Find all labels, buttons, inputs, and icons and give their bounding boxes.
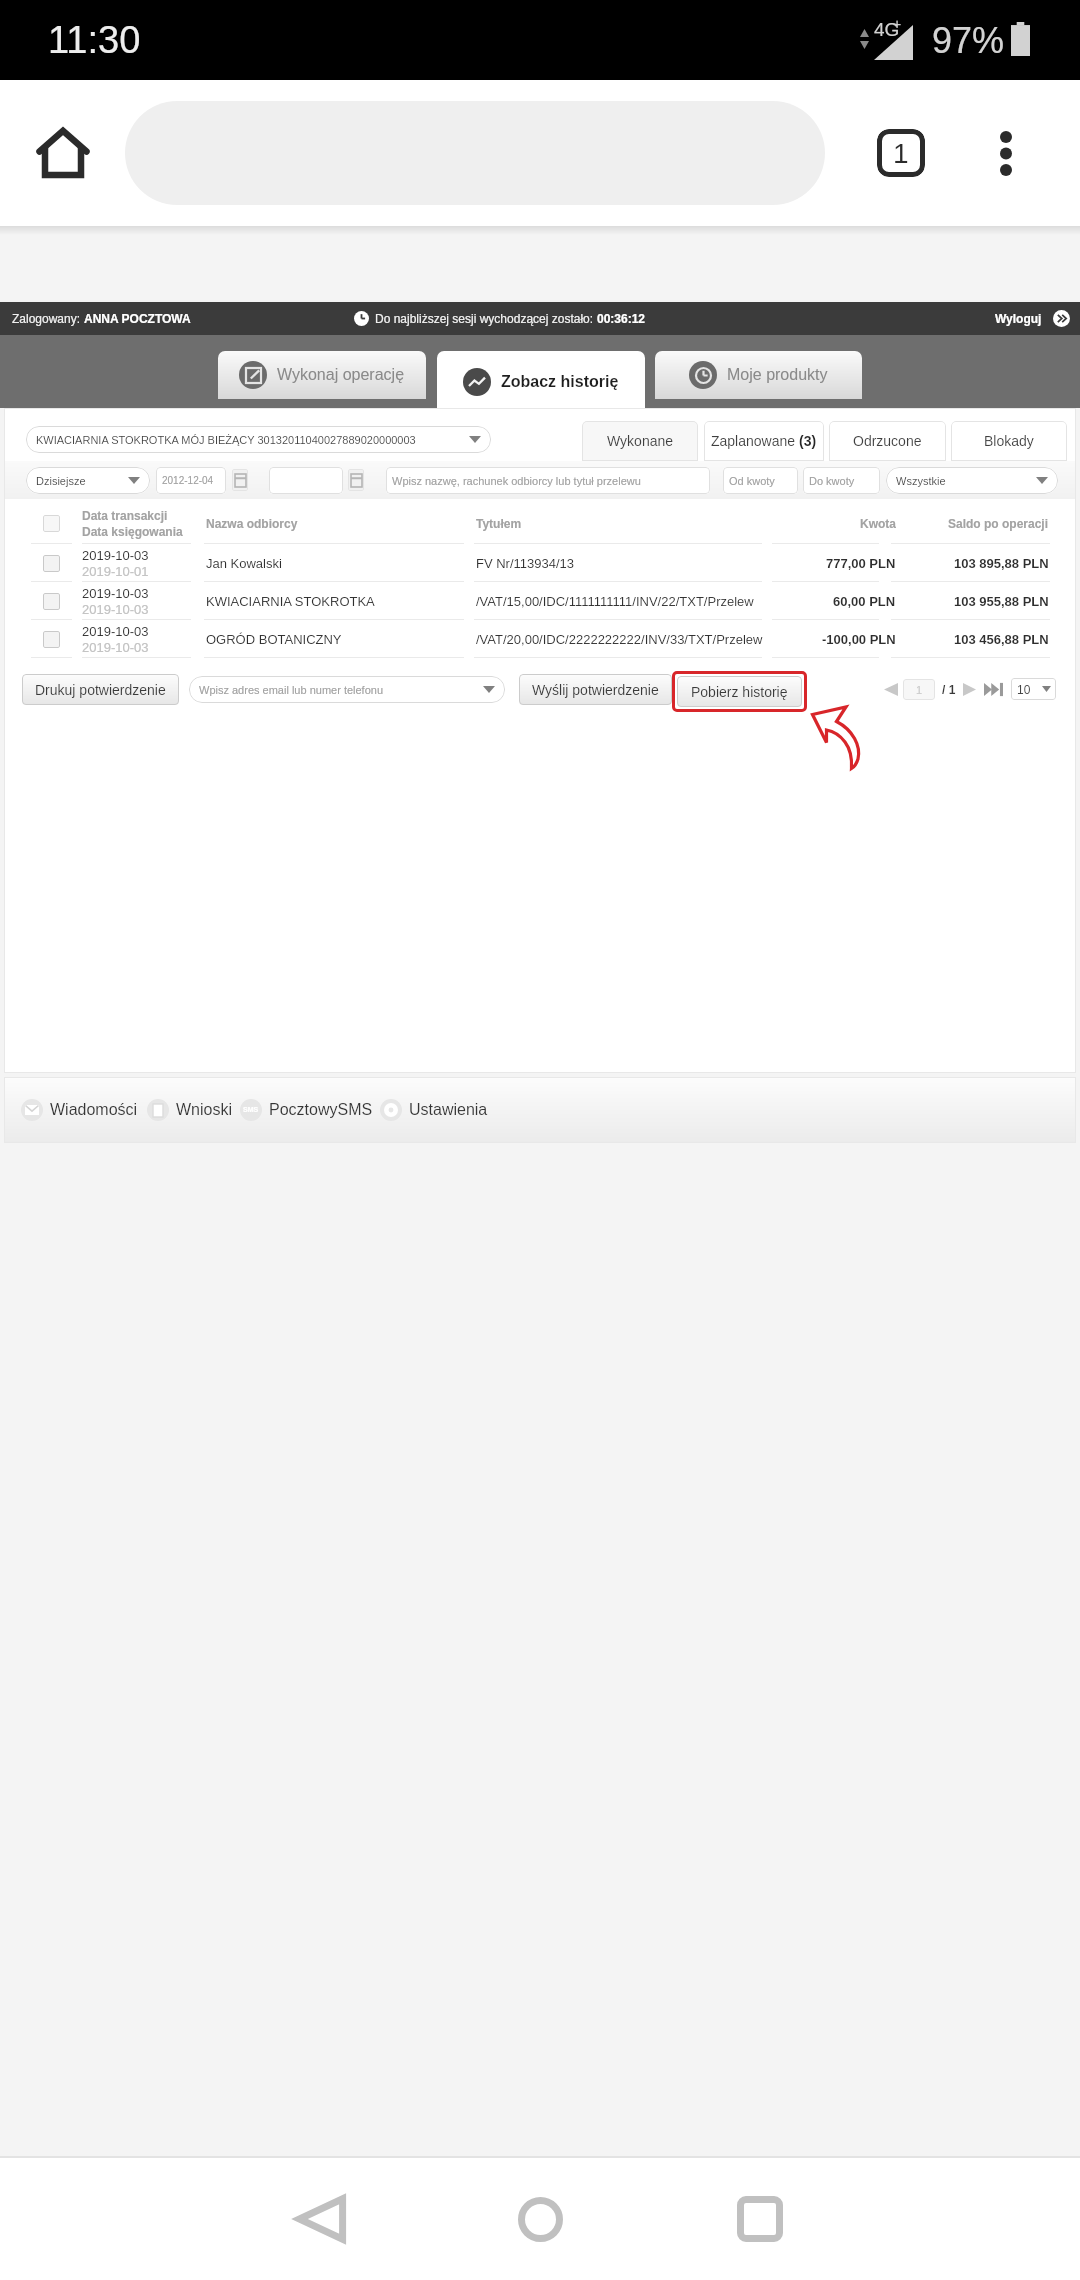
- button[interactable]: [269, 467, 343, 494]
- button[interactable]: Wpisz adres email lub numer telefonu: [189, 676, 505, 703]
- staticText: Od kwoty: [729, 475, 775, 487]
- button[interactable]: Wnioski: [147, 1099, 233, 1121]
- button[interactable]: Wszystkie: [886, 467, 1058, 494]
- button[interactable]: KWIACIARNIA STOKROTKA MÓJ BIEŻĄCY 301320…: [26, 426, 491, 453]
- staticText: 1: [916, 684, 923, 696]
- button[interactable]: Select row: [43, 555, 60, 572]
- staticText: Wykonane: [607, 433, 674, 449]
- button[interactable]: Wykonaj operację: [218, 351, 426, 399]
- staticText: Saldo po operacji: [948, 517, 1049, 530]
- button[interactable]: Select row: [4, 582, 1076, 620]
- button[interactable]: Select row: [43, 631, 60, 648]
- button[interactable]: Recent apps: [705, 2164, 815, 2274]
- button[interactable]: Back: [266, 2164, 376, 2274]
- staticText: 2019-10-03: [82, 602, 149, 617]
- staticText: 103 456,88 PLN: [954, 632, 1049, 647]
- button[interactable]: Zaplanowane: [704, 421, 824, 461]
- button[interactable]: Last page: [984, 682, 1003, 697]
- button[interactable]: Next page: [963, 682, 976, 697]
- staticText: Wszystkie: [896, 475, 946, 487]
- button[interactable]: Zobacz historię: [437, 351, 645, 408]
- button[interactable]: Od kwoty: [723, 467, 798, 494]
- button[interactable]: Select row: [4, 620, 1076, 658]
- staticText: /VAT/20,00/IDC/2222222222/INV/33/TXT/Prz…: [476, 632, 763, 647]
- button[interactable]: Wyloguj: [995, 310, 1070, 327]
- button[interactable]: Previous page: [884, 682, 898, 697]
- staticText: Wyloguj: [995, 312, 1042, 325]
- button[interactable]: Do kwoty: [803, 467, 880, 494]
- staticText: 11:30: [48, 19, 141, 61]
- staticText: Zalogowany:: [12, 312, 84, 325]
- staticText: Dzisiejsze: [36, 475, 86, 487]
- staticText: 4G: [874, 19, 900, 40]
- button[interactable]: Pick date: [232, 469, 248, 491]
- staticText: PocztowySMS: [269, 1101, 373, 1119]
- button[interactable]: Wiadomości: [21, 1099, 138, 1121]
- staticText: (3): [799, 433, 817, 449]
- staticText: SMS: [243, 1106, 259, 1114]
- button[interactable]: Select row: [43, 593, 60, 610]
- staticText: /VAT/15,00/IDC/1111111111/INV/22/TXT/Prz…: [476, 594, 754, 609]
- staticText: Do kwoty: [809, 475, 855, 487]
- button[interactable]: Ustawienia: [380, 1099, 488, 1121]
- staticText: OGRÓD BOTANICZNY: [206, 632, 342, 647]
- staticText: Blokady: [984, 433, 1034, 449]
- button[interactable]: More options: [971, 118, 1041, 188]
- staticText: +: [893, 16, 902, 32]
- staticText: Jan Kowalski: [206, 556, 282, 571]
- staticText: 2019-10-01: [82, 564, 149, 579]
- button[interactable]: Rows per page: [1011, 678, 1056, 700]
- staticText: Kwota: [860, 517, 896, 530]
- button[interactable]: Select row: [4, 544, 1076, 582]
- staticText: 97%: [932, 20, 1005, 60]
- button[interactable]: Blokady: [951, 421, 1067, 461]
- staticText: Nazwa odbiorcy: [206, 517, 298, 530]
- staticText: 2019-10-03: [82, 586, 149, 601]
- staticText: Wpisz adres email lub numer telefonu: [199, 684, 384, 696]
- staticText: 60,00 PLN: [833, 594, 896, 609]
- staticText: Wnioski: [176, 1101, 233, 1119]
- button[interactable]: Pick date: [348, 469, 364, 491]
- button[interactable]: Drukuj potwierdzenie: [22, 674, 179, 705]
- staticText: 10: [1017, 683, 1031, 696]
- staticText: KWIACIARNIA STOKROTKA MÓJ BIEŻĄCY 301320…: [36, 434, 416, 446]
- button[interactable]: Wpisz nazwę, rachunek odbiorcy lub tytuł…: [386, 467, 710, 494]
- button[interactable]: Tabs: [866, 118, 936, 188]
- staticText: Wiadomości: [50, 1101, 138, 1119]
- button[interactable]: Odrzucone: [829, 421, 946, 461]
- staticText: 00:36:12: [597, 312, 646, 325]
- button[interactable]: 2012-12-04: [156, 467, 226, 494]
- button[interactable]: Moje produkty: [655, 351, 862, 399]
- staticText: ANNA POCZTOWA: [84, 312, 191, 325]
- staticText: 2012-12-04: [162, 475, 214, 486]
- button[interactable]: Pobierz historię: [677, 676, 802, 707]
- staticText: Wykonaj operację: [277, 366, 405, 384]
- staticText: Zaplanowane: [711, 433, 799, 449]
- staticText: 2019-10-03: [82, 624, 149, 639]
- staticText: Wpisz nazwę, rachunek odbiorcy lub tytuł…: [392, 475, 641, 487]
- staticText: FV Nr/113934/13: [476, 556, 575, 571]
- button[interactable]: Dzisiejsze: [26, 467, 150, 494]
- button[interactable]: Wyślij potwierdzenie: [519, 674, 672, 705]
- staticText: 103 895,88 PLN: [954, 556, 1049, 571]
- staticText: Drukuj potwierdzenie: [35, 682, 166, 698]
- staticText: Zobacz historię: [501, 373, 619, 391]
- staticText: KWIACIARNIA STOKROTKA: [206, 594, 375, 609]
- staticText: Ustawienia: [409, 1101, 488, 1119]
- staticText: Moje produkty: [727, 366, 828, 384]
- staticText: 2019-10-03: [82, 640, 149, 655]
- button[interactable]: Home: [485, 2164, 595, 2274]
- staticText: -100,00 PLN: [822, 632, 896, 647]
- button[interactable]: Home: [24, 114, 102, 192]
- staticText: Odrzucone: [853, 433, 922, 449]
- staticText: Data transakcji: [82, 509, 168, 522]
- staticText: Do najbliższej sesji wychodzącej zostało…: [375, 312, 597, 325]
- button[interactable]: Select all: [43, 515, 60, 532]
- button[interactable]: SMS: [240, 1099, 373, 1121]
- staticText: Tytułem: [476, 517, 522, 530]
- staticText: 2019-10-03: [82, 548, 149, 563]
- staticText: 777,00 PLN: [826, 556, 896, 571]
- staticText: 1: [893, 138, 909, 169]
- button[interactable]: Wykonane: [582, 421, 698, 461]
